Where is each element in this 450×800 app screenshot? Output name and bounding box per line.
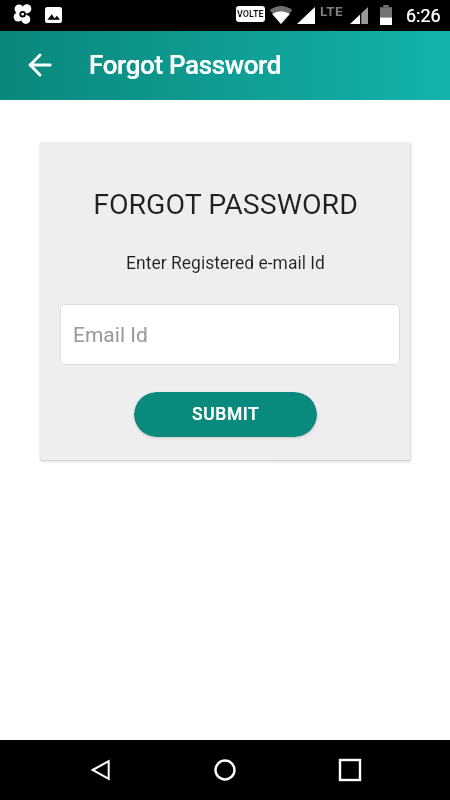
button[interactable]: Home: [201, 746, 249, 794]
button[interactable]: Back: [77, 746, 125, 794]
staticText: 6:26: [406, 5, 441, 26]
staticText: Email Id: [73, 323, 148, 348]
staticText: VOLTE: [237, 9, 264, 20]
staticText: FORGOT PASSWORD: [93, 188, 358, 221]
staticText: SUBMIT: [192, 404, 260, 425]
button[interactable]: SUBMIT: [134, 392, 317, 437]
button[interactable]: Back: [16, 41, 64, 89]
button[interactable]: Recents: [326, 746, 374, 794]
staticText: LTE: [320, 3, 343, 19]
button[interactable]: Email Id: [60, 304, 400, 365]
staticText: Enter Registered e-mail Id: [126, 253, 325, 274]
staticText: Forgot Password: [89, 50, 281, 80]
